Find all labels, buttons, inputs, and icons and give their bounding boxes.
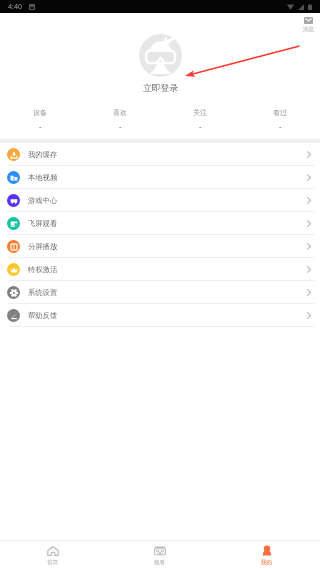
- staticText: 喜欢: [113, 108, 127, 117]
- button[interactable]: 分屏播放: [0, 235, 320, 258]
- staticText: 4:40: [8, 2, 22, 12]
- staticText: -: [39, 121, 42, 132]
- staticText: 首页: [47, 559, 59, 566]
- button[interactable]: 头像: [139, 34, 182, 77]
- staticText: -: [279, 121, 282, 132]
- staticText: 分屏播放: [28, 242, 58, 251]
- button[interactable]: 关注: [160, 108, 240, 132]
- staticText: 我的缓存: [28, 150, 58, 159]
- button[interactable]: 我的缓存: [0, 143, 320, 166]
- button[interactable]: 观看: [106, 541, 213, 568]
- button[interactable]: 本地视频: [0, 166, 320, 189]
- button[interactable]: 喜欢: [80, 108, 160, 132]
- staticText: 消息: [303, 26, 314, 33]
- staticText: 观看: [154, 559, 166, 566]
- button[interactable]: 飞屏观看: [0, 212, 320, 235]
- staticText: 看过: [273, 108, 287, 117]
- button[interactable]: 游戏中心: [0, 189, 320, 212]
- button[interactable]: 设备: [0, 108, 80, 132]
- staticText: 游戏中心: [28, 196, 58, 205]
- button[interactable]: 特权激活: [0, 258, 320, 281]
- button[interactable]: 帮助反馈: [0, 304, 320, 327]
- staticText: 本地视频: [28, 173, 58, 182]
- staticText: 系统设置: [28, 288, 58, 297]
- staticText: 设备: [33, 108, 47, 117]
- staticText: 我的: [261, 559, 273, 566]
- staticText: 特权激活: [28, 265, 58, 274]
- button[interactable]: 消息: [301, 17, 316, 33]
- button[interactable]: 看过: [240, 108, 320, 132]
- staticText: -: [119, 121, 122, 132]
- staticText: 飞屏观看: [28, 219, 58, 228]
- button[interactable]: 系统设置: [0, 281, 320, 304]
- staticText: 帮助反馈: [28, 311, 58, 320]
- button[interactable]: 我的: [213, 541, 320, 568]
- staticText: 关注: [193, 108, 207, 117]
- button[interactable]: 首页: [0, 541, 106, 568]
- staticText: -: [199, 121, 202, 132]
- button[interactable]: 立即登录: [143, 83, 179, 94]
